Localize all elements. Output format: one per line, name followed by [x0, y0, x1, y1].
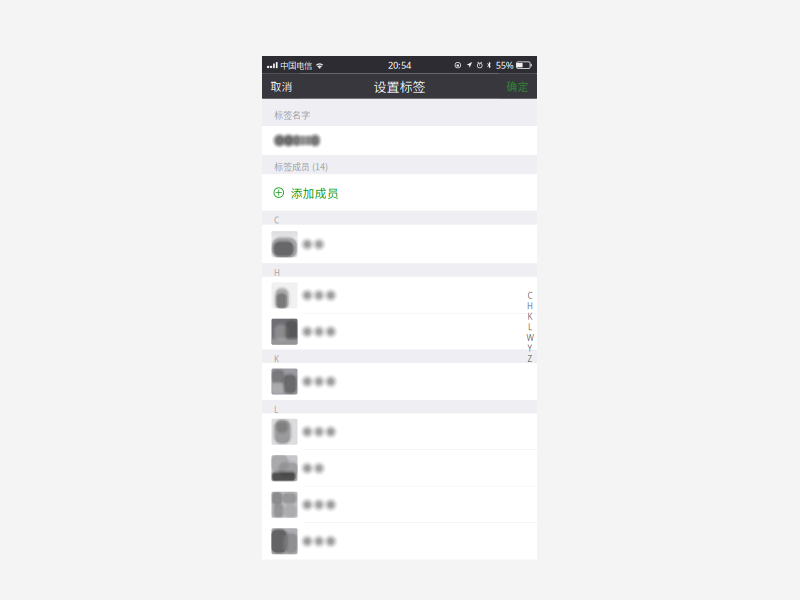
button[interactable]: 确定: [499, 73, 536, 98]
button[interactable]: 添加成员: [262, 174, 537, 211]
button[interactable]: [262, 523, 537, 559]
staticText: L: [274, 404, 278, 415]
staticText: K: [274, 354, 279, 364]
button[interactable]: Section index: [524, 290, 535, 364]
staticText: 取消: [270, 78, 292, 94]
staticText: 20:54: [388, 59, 411, 71]
button[interactable]: [262, 225, 537, 263]
button[interactable]: [262, 277, 537, 314]
button[interactable]: 取消: [263, 73, 300, 98]
staticText: 确定: [506, 78, 528, 94]
staticText: L: [528, 322, 532, 332]
button[interactable]: [262, 363, 537, 400]
staticText: H: [274, 268, 280, 278]
staticText: K: [527, 311, 532, 322]
button[interactable]: [262, 314, 537, 349]
staticText: 中国电信: [280, 59, 312, 71]
button[interactable]: [262, 413, 537, 450]
staticText: Z: [527, 354, 532, 364]
staticText: 55%: [496, 59, 514, 71]
staticText: 添加成员: [291, 184, 339, 201]
staticText: 标签成员 (14): [274, 160, 328, 173]
staticText: W: [526, 332, 533, 343]
staticText: H: [527, 301, 533, 311]
staticText: Y: [527, 343, 532, 354]
staticText: 标签名字: [274, 108, 310, 121]
staticText: 设置标签: [373, 76, 425, 95]
button[interactable]: [262, 486, 537, 523]
staticText: C: [527, 290, 532, 301]
staticText: C: [274, 215, 279, 226]
button[interactable]: [262, 450, 537, 486]
